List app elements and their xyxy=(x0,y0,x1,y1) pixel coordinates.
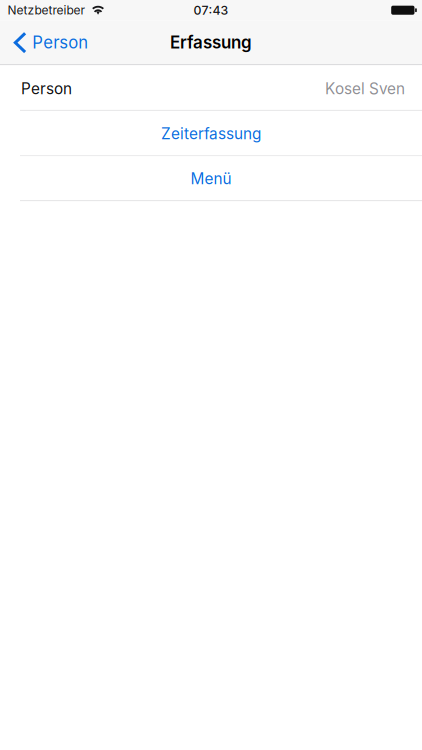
staticText: Netzbetreiber xyxy=(7,3,85,17)
button[interactable]: Person xyxy=(0,65,422,110)
button[interactable]: Zeiterfassung xyxy=(0,111,422,155)
staticText: Zeiterfassung xyxy=(161,124,261,143)
staticText: 07:43 xyxy=(193,3,228,18)
staticText: Kosel Sven xyxy=(325,79,405,98)
staticText: Menü xyxy=(190,169,231,188)
staticText: Person xyxy=(32,32,88,52)
button[interactable]: Person xyxy=(0,20,98,64)
button[interactable]: Menü xyxy=(0,156,422,200)
staticText: Person xyxy=(21,79,72,98)
staticText: Erfassung xyxy=(170,32,252,53)
